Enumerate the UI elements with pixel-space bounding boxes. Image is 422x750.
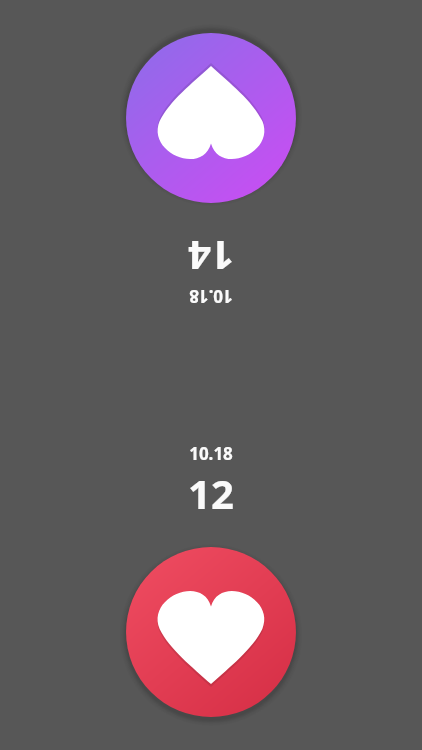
staticText: 10.18 [189, 442, 233, 465]
staticText: 10.18 [189, 285, 233, 308]
staticText: 14 [188, 230, 234, 284]
button[interactable]: Heart rate 12 on 10.18 [115, 536, 307, 728]
staticText: 12 [188, 466, 234, 520]
button[interactable]: Heart rate 14 on 10.18 [115, 22, 307, 214]
